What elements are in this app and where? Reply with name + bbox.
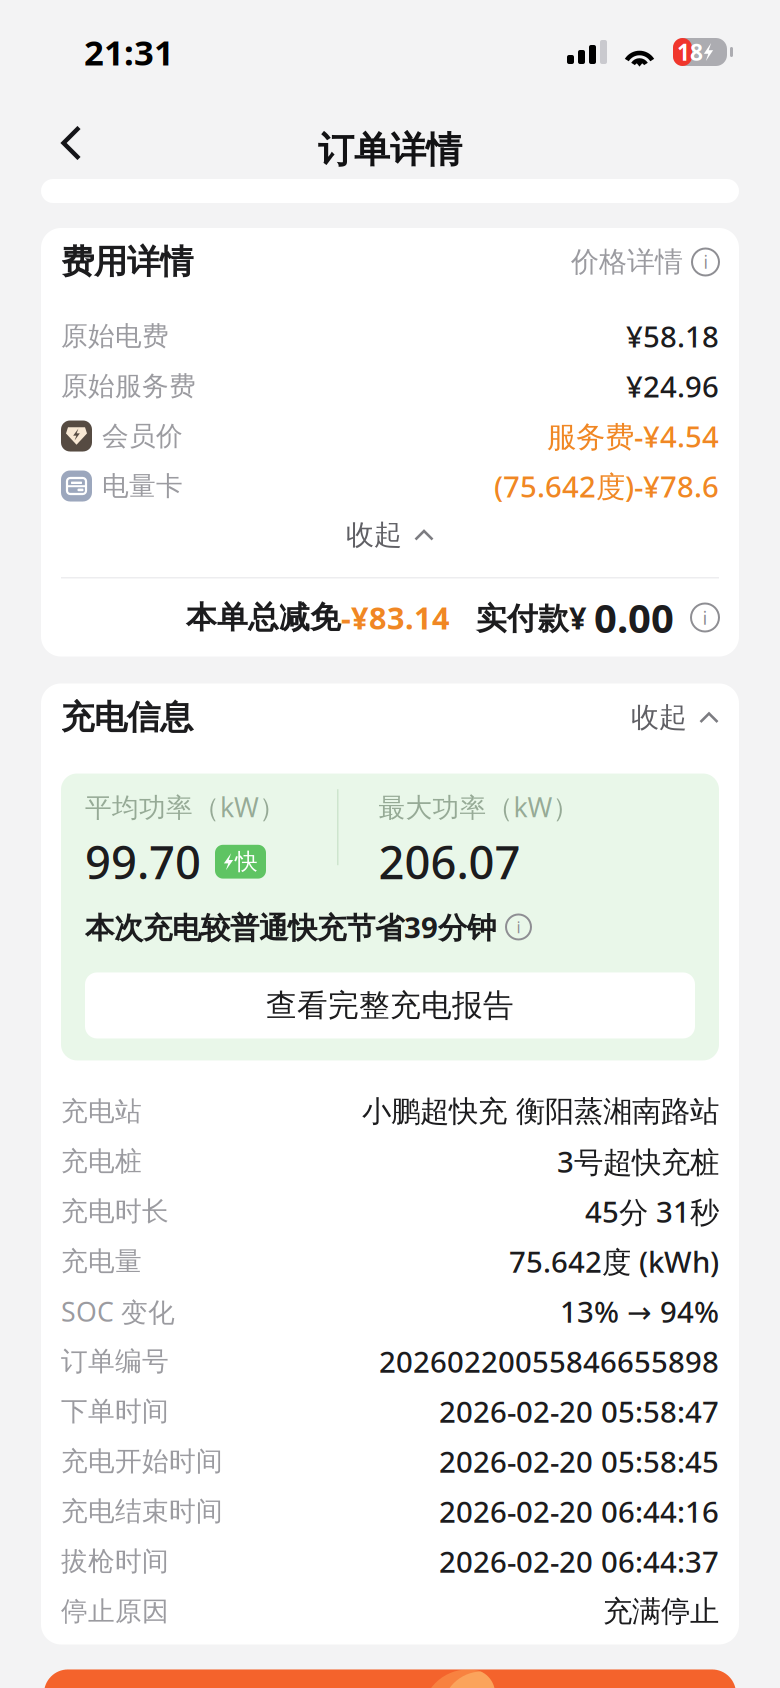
staticText: 20260220055846655898 xyxy=(379,1342,719,1381)
staticText: 订单编号 xyxy=(61,1345,169,1378)
staticText: 平均功率（kW） xyxy=(85,789,286,825)
staticText: 下单时间 xyxy=(61,1395,169,1428)
button[interactable]: 查看完整充电报告 xyxy=(85,972,695,1038)
staticText: 206.07 xyxy=(378,832,520,892)
staticText: 实付款¥ xyxy=(476,597,587,638)
staticText: (75.642度)-¥78.6 xyxy=(494,466,719,505)
staticText: 2026-02-20 05:58:45 xyxy=(439,1442,719,1481)
staticText: 充电信息 xyxy=(61,697,193,738)
staticText: 服务费-¥4.54 xyxy=(547,416,719,455)
staticText: 订单详情 xyxy=(318,128,462,172)
staticText: 小鹏超快充 衡阳蒸湘南路站 xyxy=(362,1093,719,1129)
staticText: 3号超快充桩 xyxy=(557,1142,719,1181)
button[interactable]: 收起 xyxy=(631,700,719,735)
staticText: 99.70 xyxy=(85,832,201,892)
staticText: 原始服务费 xyxy=(61,370,196,402)
staticText: ¥58.18 xyxy=(626,316,719,355)
staticText: 13% → 94% xyxy=(560,1292,719,1331)
staticText: 充电时长 xyxy=(61,1195,169,1228)
button[interactable]: 收起 xyxy=(61,511,719,559)
staticText: 费用详情 xyxy=(61,241,193,282)
staticText: ¥24.96 xyxy=(626,366,719,405)
staticText: 2026-02-20 05:58:47 xyxy=(439,1392,719,1431)
staticText: i xyxy=(516,916,520,938)
staticText: 充电量 xyxy=(61,1245,142,1278)
staticText: 原始电费 xyxy=(61,320,169,352)
staticText: 电量卡 xyxy=(102,470,183,502)
staticText: 75.642度 (kWh) xyxy=(509,1242,719,1281)
staticText: 会员价 xyxy=(102,420,183,452)
staticText: i xyxy=(702,605,707,630)
staticText: i xyxy=(703,250,707,273)
staticText: 收起 xyxy=(631,700,687,735)
staticText: 充电站 xyxy=(61,1095,142,1128)
staticText: 18 xyxy=(677,37,703,67)
staticText: 充电桩 xyxy=(61,1145,142,1178)
staticText: 最大功率（kW） xyxy=(378,789,579,825)
staticText: 停止原因 xyxy=(61,1595,169,1628)
staticText: 收起 xyxy=(346,518,402,552)
staticText: 查看完整充电报告 xyxy=(266,987,514,1024)
button[interactable]: 价格详情 xyxy=(571,245,719,279)
staticText: 45分 31秒 xyxy=(585,1192,719,1231)
staticText: 快 xyxy=(235,848,258,876)
staticText: 价格详情 xyxy=(571,245,683,279)
staticText: 2026-02-20 06:44:16 xyxy=(439,1492,719,1531)
button[interactable]: Back xyxy=(0,90,107,182)
staticText: 充满停止 xyxy=(603,1593,719,1629)
staticText: 0.00 xyxy=(594,591,674,644)
staticText: SOC 变化 xyxy=(61,1294,175,1329)
staticText: 本单总减免 xyxy=(186,599,341,636)
staticText: -¥83.14 xyxy=(341,597,450,638)
staticText: 充电结束时间 xyxy=(61,1495,223,1528)
staticText: 2026-02-20 06:44:37 xyxy=(439,1542,719,1581)
staticText: 21:31 xyxy=(84,29,174,75)
staticText: 拔枪时间 xyxy=(61,1545,169,1578)
staticText: 本次充电较普通快充节省39分钟 xyxy=(85,907,496,946)
staticText: 充电开始时间 xyxy=(61,1445,223,1478)
